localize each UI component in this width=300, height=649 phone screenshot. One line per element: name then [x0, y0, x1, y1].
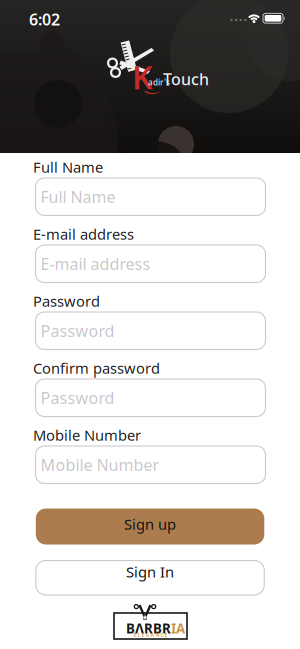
- button[interactable]: Sign up: [36, 508, 264, 544]
- staticText: Touch: [163, 68, 209, 90]
- staticText: adir's: [148, 77, 170, 88]
- staticText: E-mail address: [33, 224, 134, 244]
- staticText: Mobile Number: [40, 454, 159, 475]
- staticText: Confirm password: [33, 358, 160, 378]
- staticText: E-mail address: [40, 253, 150, 274]
- staticText: Sign up: [124, 514, 176, 534]
- staticText: 6:02: [29, 9, 60, 30]
- staticText: Full Name: [40, 186, 115, 207]
- staticText: E L E G A N C E: [133, 631, 167, 638]
- staticText: B: [126, 619, 135, 637]
- staticText: Password: [33, 291, 100, 311]
- staticText: Λ: [135, 619, 144, 637]
- staticText: Password: [40, 387, 114, 408]
- staticText: Full Name: [33, 157, 103, 177]
- staticText: Password: [40, 320, 114, 341]
- staticText: RBR: [144, 619, 171, 637]
- staticText: Sign In: [126, 562, 174, 581]
- staticText: K: [132, 55, 153, 98]
- staticText: IA: [171, 619, 185, 637]
- staticText: Mobile Number: [33, 425, 141, 445]
- button[interactable]: Sign In: [36, 560, 264, 595]
